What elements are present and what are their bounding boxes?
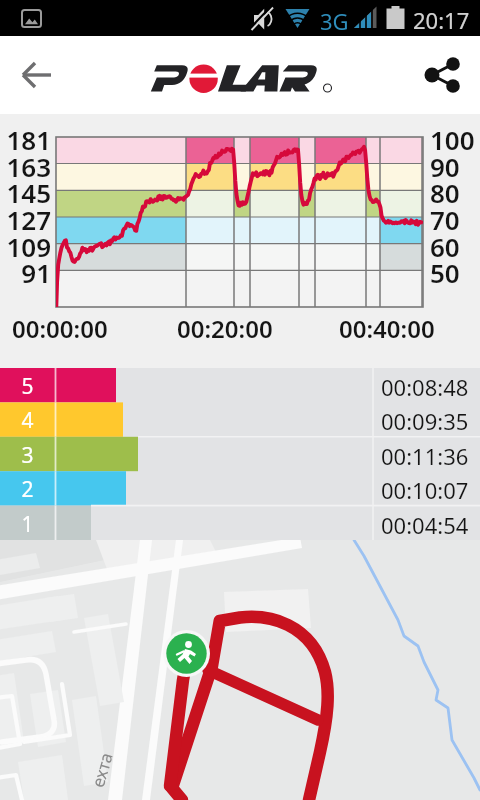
staticText: 4: [0, 406, 55, 433]
staticText: 70: [430, 202, 460, 237]
staticText: 163: [0, 149, 51, 184]
staticText: 20:17: [413, 5, 470, 35]
staticText: 00:04:54: [381, 510, 469, 540]
staticText: 00:20:00: [177, 312, 273, 345]
button[interactable]: 1: [0, 506, 480, 540]
staticText: 3: [0, 441, 55, 468]
staticText: 2: [0, 475, 55, 502]
staticText: 60: [430, 229, 460, 264]
staticText: 1: [0, 510, 55, 537]
button[interactable]: 3: [0, 437, 480, 471]
staticText: 5: [0, 372, 55, 399]
staticText: 109: [0, 229, 51, 264]
button[interactable]: 5: [0, 368, 480, 402]
button[interactable]: 2: [0, 471, 480, 505]
staticText: 3G: [320, 6, 349, 36]
staticText: 80: [430, 175, 460, 210]
button[interactable]: Share: [410, 40, 476, 110]
staticText: ехта: [86, 749, 118, 790]
staticText: 91: [0, 255, 51, 290]
staticText: 00:08:48: [381, 372, 469, 402]
staticText: 00:40:00: [339, 312, 435, 345]
staticText: 181: [0, 122, 51, 157]
staticText: 00:11:36: [381, 441, 469, 471]
staticText: 50: [430, 255, 460, 290]
button[interactable]: Back: [4, 40, 70, 110]
staticText: 127: [0, 202, 51, 237]
staticText: 00:09:35: [381, 406, 469, 436]
staticText: 145: [0, 175, 51, 210]
staticText: 100: [430, 122, 475, 157]
button[interactable]: 4: [0, 402, 480, 436]
staticText: 90: [430, 149, 460, 184]
staticText: 00:10:07: [381, 475, 469, 505]
staticText: 00:00:00: [12, 312, 108, 345]
